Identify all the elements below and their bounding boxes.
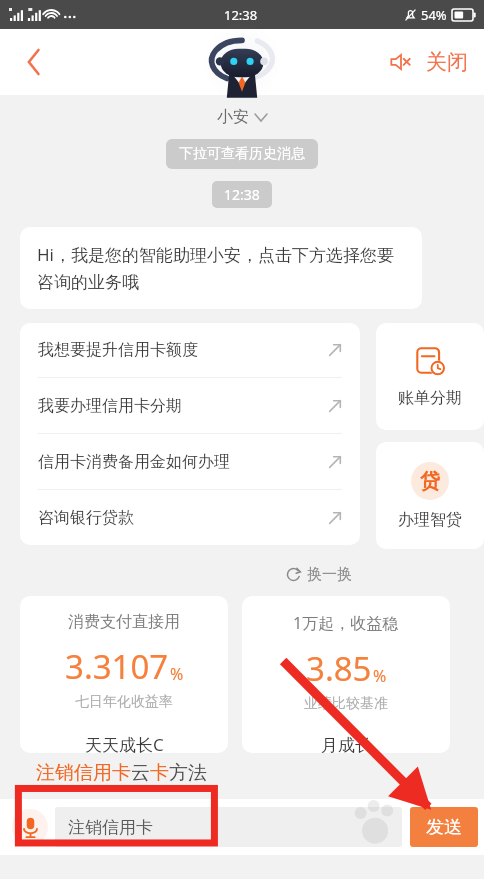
staticText: 咨询银行贷款 [38, 508, 134, 528]
staticText: 12:38 [224, 185, 260, 204]
staticText: 信用卡消费备用金如何办理 [38, 452, 230, 472]
button[interactable]: 下拉可查看历史消息 [166, 139, 318, 169]
button[interactable]: 注销信用卡 [55, 807, 402, 847]
button[interactable]: Voice input [12, 809, 48, 845]
button[interactable]: 信用卡消费备用金如何办理 [20, 434, 360, 489]
staticText: 账单分期 [398, 388, 462, 408]
staticText: 注销信用卡云卡方法 [36, 761, 207, 785]
button[interactable]: 发送 [410, 807, 478, 847]
staticText: 贷 [420, 469, 440, 494]
staticText: 我想要提升信用卡额度 [38, 340, 198, 360]
staticText: 天天成长C [85, 733, 164, 753]
button[interactable]: 我要办理信用卡分期 [20, 378, 360, 433]
button[interactable]: 换一换 [282, 561, 356, 588]
button[interactable]: Back [12, 40, 56, 84]
staticText: 月成长 [321, 735, 372, 753]
staticText: 注销信用卡 [68, 817, 153, 838]
staticText: 发送 [426, 816, 462, 839]
button[interactable]: Mute [384, 45, 418, 79]
button[interactable]: 贷 [376, 442, 484, 549]
staticText: 七日年化收益率 [75, 693, 173, 711]
staticText: % [373, 665, 387, 687]
staticText: 办理智贷 [398, 510, 462, 530]
staticText: % [170, 663, 184, 685]
staticText: 54% [421, 6, 447, 24]
button[interactable]: 小安 [213, 103, 271, 131]
button[interactable]: 关闭 [424, 43, 470, 81]
button[interactable]: 1万起，收益稳 [242, 596, 450, 753]
staticText: 我要办理信用卡分期 [38, 396, 182, 416]
staticText: 关闭 [426, 49, 468, 75]
staticText: 消费支付直接用 [68, 612, 180, 632]
button[interactable]: 消费支付直接用 [20, 596, 228, 753]
staticText: 3.85 [306, 646, 372, 691]
staticText: 业绩比较基准 [304, 695, 388, 713]
staticText: 小安 [217, 107, 249, 127]
staticText: Hi，我是您的智能助理小安，点击下方选择您要咨询的业务哦 [37, 243, 405, 293]
staticText: 3.3107 [65, 644, 169, 689]
staticText: 换一换 [307, 565, 352, 584]
staticText: 1万起，收益稳 [293, 612, 399, 634]
staticText: 下拉可查看历史消息 [179, 145, 305, 163]
staticText: 12:38 [224, 6, 258, 24]
button[interactable]: 账单分期 [376, 323, 484, 430]
button[interactable]: 咨询银行贷款 [20, 490, 360, 545]
button[interactable]: 我想要提升信用卡额度 [20, 323, 360, 377]
